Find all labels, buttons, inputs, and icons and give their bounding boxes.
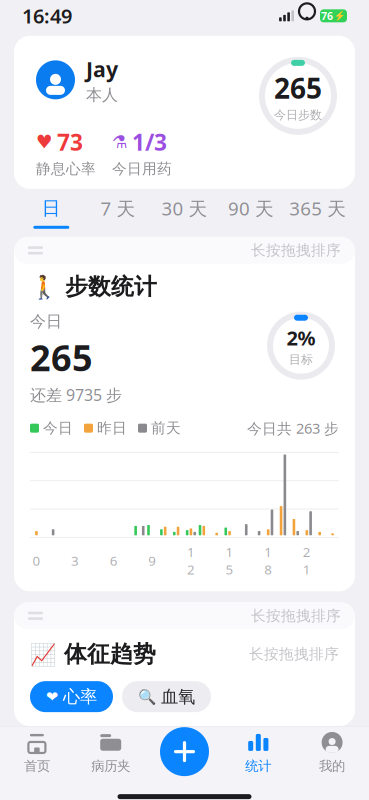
- staticText: 7 天: [100, 196, 135, 221]
- button[interactable]: 365 天: [284, 192, 351, 234]
- button[interactable]: 添加: [160, 727, 209, 776]
- staticText: 90 天: [228, 196, 274, 221]
- button[interactable]: 病历夹: [74, 727, 148, 779]
- staticText: 还差 9735 步: [30, 384, 122, 405]
- staticText: 体征趋势: [64, 640, 156, 668]
- staticText: 🔍: [138, 688, 156, 705]
- staticText: 长按拖拽排序: [249, 645, 339, 663]
- staticText: 步数统计: [65, 273, 157, 301]
- staticText: ♥: [36, 131, 53, 152]
- staticText: 1/3: [132, 127, 167, 157]
- button[interactable]: 90 天: [218, 192, 284, 234]
- staticText: 📈: [30, 642, 57, 666]
- staticText: 前天: [151, 419, 181, 437]
- button[interactable]: ❤: [30, 681, 113, 712]
- staticText: 今日用药: [112, 160, 172, 178]
- staticText: 365 天: [289, 196, 346, 221]
- staticText: 0: [32, 552, 40, 569]
- button[interactable]: 首页: [0, 727, 74, 779]
- button[interactable]: 我的: [295, 727, 369, 779]
- staticText: 2%: [286, 325, 315, 351]
- staticText: 30 天: [161, 196, 207, 221]
- staticText: Jay: [86, 55, 118, 83]
- staticText: 目标: [289, 352, 313, 367]
- staticText: 265: [30, 333, 93, 381]
- staticText: 心率: [63, 686, 97, 707]
- staticText: ⚗: [112, 132, 128, 152]
- staticText: ⚡: [334, 10, 346, 21]
- staticText: 3: [71, 552, 79, 569]
- staticText: 我的: [319, 758, 345, 774]
- button[interactable]: 7 天: [85, 192, 151, 234]
- staticText: 今日: [30, 312, 62, 331]
- button[interactable]: 日: [18, 192, 85, 234]
- button[interactable]: 30 天: [151, 192, 218, 234]
- staticText: 血氧: [161, 686, 195, 707]
- staticText: 今日: [43, 419, 73, 437]
- staticText: 9: [148, 552, 156, 569]
- staticText: 15: [226, 543, 234, 578]
- staticText: 265: [274, 69, 322, 107]
- staticText: 6: [110, 552, 118, 569]
- button[interactable]: 🔍: [122, 681, 211, 712]
- staticText: 静息心率: [36, 160, 96, 178]
- staticText: 本人: [86, 85, 118, 105]
- staticText: 今日步数: [274, 108, 322, 122]
- staticText: 18: [264, 543, 272, 578]
- staticText: 病历夹: [91, 758, 130, 774]
- button[interactable]: 统计: [221, 727, 295, 779]
- staticText: 73: [57, 127, 83, 157]
- staticText: 长按拖拽排序: [251, 607, 341, 625]
- staticText: 首页: [24, 758, 50, 774]
- staticText: 今日共 263 步: [247, 418, 339, 438]
- staticText: 16:49: [22, 3, 72, 29]
- staticText: 日: [42, 197, 61, 220]
- staticText: 长按拖拽排序: [251, 241, 341, 259]
- staticText: 昨日: [97, 419, 127, 437]
- staticText: 76: [321, 9, 333, 23]
- staticText: 🚶: [30, 274, 58, 300]
- staticText: 统计: [245, 758, 271, 774]
- staticText: 21: [303, 543, 311, 578]
- staticText: ❤: [46, 688, 58, 705]
- staticText: 12: [187, 543, 195, 578]
